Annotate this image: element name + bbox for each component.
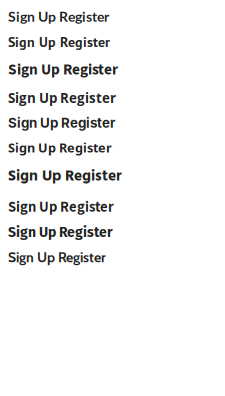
staticText: Sign Up Register: [8, 89, 116, 107]
staticText: Sign Up Register: [8, 197, 114, 216]
staticText: Sign Up Register: [8, 59, 118, 81]
staticText: Sign Up Register: [8, 139, 112, 156]
staticText: Sign Up Register: [8, 224, 113, 241]
staticText: Sign Up Register: [8, 33, 110, 51]
staticText: Sign Up Register: [8, 8, 109, 25]
staticText: Sign Up Register: [8, 249, 106, 266]
staticText: Sign Up Register: [8, 115, 115, 131]
staticText: Sign Up Register: [8, 164, 122, 189]
